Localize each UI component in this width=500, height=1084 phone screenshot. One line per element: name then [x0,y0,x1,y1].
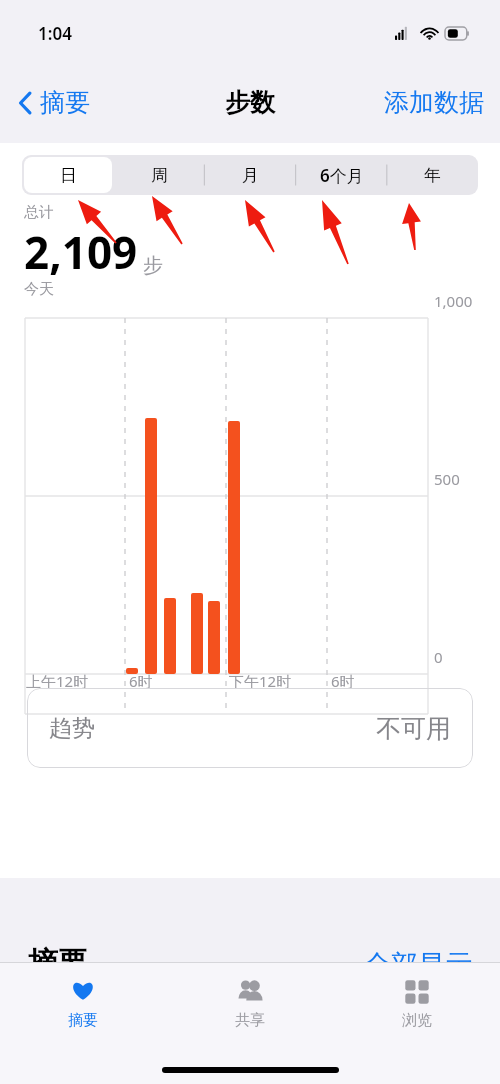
staticText: 下午12时 [229,671,292,691]
staticText: 浏览 [402,1011,432,1030]
staticText: 6时 [331,671,355,691]
button[interactable]: 日 [24,157,112,193]
button[interactable]: 6个月 [298,157,385,193]
staticText: 0 [434,647,443,667]
staticText: 趋势 [49,714,95,743]
staticText: 月 [242,165,259,186]
staticText: 6个月 [320,164,364,187]
staticText: 2,109 [24,222,138,282]
staticText: 步 [143,253,163,278]
staticText: 1,000 [434,291,473,311]
button[interactable]: 摘要 [12,81,96,124]
staticText: 1:04 [38,22,72,45]
staticText: 摘要 [28,944,88,982]
button[interactable]: 添加数据 [378,81,490,124]
button[interactable]: 年 [389,157,476,193]
staticText: 步数 [225,87,275,118]
staticText: 摘要 [40,87,90,118]
staticText: 全部显示 [364,948,472,982]
staticText: 日 [60,165,77,186]
staticText: 500 [434,469,460,489]
button[interactable]: 趋势 [27,688,473,768]
staticText: 摘要 [68,1011,98,1030]
staticText: 不可用 [376,713,451,744]
staticText: 添加数据 [384,87,484,118]
staticText: 上午12时 [26,671,89,691]
staticText: 总计 [24,203,54,222]
staticText: 今天 [24,280,54,299]
staticText: 共享 [235,1011,265,1030]
staticText: 周 [151,165,168,186]
staticText: 6时 [129,671,153,691]
staticText: 年 [424,165,441,186]
button[interactable]: 周 [116,157,203,193]
button[interactable]: 月 [207,157,294,193]
button[interactable]: 共享 [166,963,333,1030]
button[interactable]: 摘要 [0,963,166,1030]
button[interactable]: 浏览 [333,963,500,1030]
